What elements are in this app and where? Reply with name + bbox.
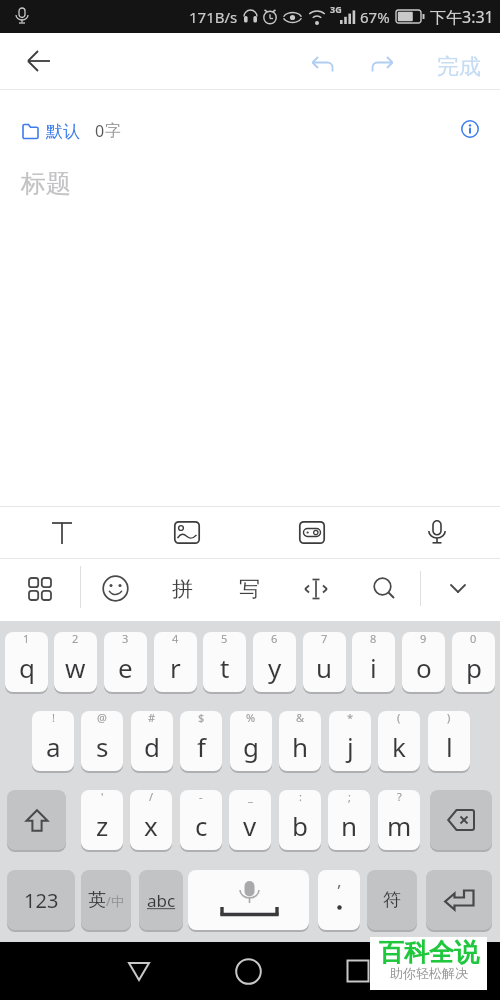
staticText: /: [149, 789, 154, 804]
staticText: s: [96, 729, 109, 764]
staticText: o: [416, 650, 432, 685]
button[interactable]: [409, 507, 465, 558]
staticText: (: [397, 710, 401, 725]
staticText: 67%: [360, 7, 390, 27]
staticText: _: [248, 789, 253, 804]
button[interactable]: [290, 562, 342, 615]
staticText: &: [296, 710, 305, 725]
staticText: $: [198, 710, 205, 725]
button[interactable]: n: [328, 790, 370, 850]
staticText: 中: [111, 893, 124, 909]
button[interactable]: q: [5, 632, 48, 692]
button[interactable]: ,: [318, 870, 360, 930]
button[interactable]: [284, 507, 340, 558]
staticText: f: [197, 729, 206, 764]
button[interactable]: i: [352, 632, 395, 692]
button[interactable]: b: [279, 790, 321, 850]
button[interactable]: 写: [223, 562, 275, 615]
button[interactable]: c: [180, 790, 222, 850]
staticText: 写: [239, 576, 260, 602]
button[interactable]: [188, 870, 309, 930]
staticText: ,: [337, 869, 342, 892]
staticText: 2: [72, 631, 79, 646]
staticText: 5: [221, 631, 228, 646]
staticText: 默认: [46, 121, 80, 142]
staticText: e: [118, 650, 133, 685]
staticText: 完成: [437, 53, 481, 81]
staticText: k: [392, 729, 406, 764]
button[interactable]: e: [104, 632, 147, 692]
button[interactable]: u: [303, 632, 346, 692]
button[interactable]: [34, 507, 90, 558]
staticText: #: [148, 710, 156, 725]
staticText: 英: [88, 889, 106, 912]
button[interactable]: 完成: [428, 45, 490, 89]
button[interactable]: [302, 45, 338, 81]
staticText: 6: [271, 631, 278, 646]
staticText: t: [220, 650, 230, 685]
button[interactable]: k: [378, 711, 420, 771]
button[interactable]: d: [131, 711, 173, 771]
staticText: c: [195, 808, 208, 843]
button[interactable]: [14, 562, 66, 615]
button[interactable]: [367, 45, 403, 81]
staticText: 0: [470, 631, 477, 646]
button[interactable]: 符: [367, 870, 417, 930]
button[interactable]: r: [154, 632, 197, 692]
button[interactable]: y: [253, 632, 296, 692]
button[interactable]: [430, 790, 492, 850]
staticText: 拼: [172, 576, 193, 602]
button[interactable]: 英: [81, 870, 131, 930]
staticText: u: [316, 650, 333, 685]
button[interactable]: a: [32, 711, 74, 771]
button[interactable]: [214, 949, 282, 993]
staticText: v: [243, 808, 257, 843]
staticText: r: [170, 650, 181, 685]
button[interactable]: 百科全说: [370, 937, 487, 990]
staticText: 8: [370, 631, 377, 646]
button[interactable]: 默认: [22, 116, 80, 146]
button[interactable]: [432, 562, 484, 615]
button[interactable]: t: [203, 632, 246, 692]
button[interactable]: [89, 562, 141, 615]
button[interactable]: w: [54, 632, 97, 692]
staticText: 标题: [21, 168, 71, 199]
button[interactable]: [426, 870, 492, 930]
button[interactable]: v: [229, 790, 271, 850]
button[interactable]: 拼: [156, 562, 208, 615]
button[interactable]: [105, 949, 173, 993]
staticText: *: [347, 710, 354, 725]
staticText: 下午3:31: [430, 6, 494, 28]
button[interactable]: l: [428, 711, 470, 771]
staticText: @: [97, 710, 107, 725]
staticText: b: [292, 808, 308, 843]
button[interactable]: p: [452, 632, 495, 692]
button[interactable]: f: [180, 711, 222, 771]
button[interactable]: 123: [7, 870, 75, 930]
button[interactable]: [16, 38, 62, 84]
button[interactable]: [159, 507, 215, 558]
button[interactable]: g: [230, 711, 272, 771]
staticText: j: [347, 729, 354, 764]
staticText: 助你轻松解决: [390, 965, 468, 981]
button[interactable]: [450, 109, 490, 149]
button[interactable]: s: [81, 711, 123, 771]
staticText: 符: [383, 889, 401, 912]
button[interactable]: o: [402, 632, 445, 692]
staticText: 171B/s: [189, 7, 238, 27]
button[interactable]: h: [279, 711, 321, 771]
button[interactable]: j: [329, 711, 371, 771]
staticText: 7: [321, 631, 328, 646]
button[interactable]: m: [378, 790, 420, 850]
staticText: 123: [24, 887, 59, 914]
staticText: ?: [397, 789, 402, 804]
button[interactable]: [358, 562, 410, 615]
button[interactable]: [324, 949, 392, 993]
button[interactable]: abc: [139, 870, 183, 930]
staticText: m: [387, 808, 412, 843]
staticText: 百科全说: [379, 937, 479, 968]
button[interactable]: x: [130, 790, 172, 850]
staticText: i: [370, 650, 377, 685]
button[interactable]: z: [81, 790, 123, 850]
button[interactable]: [7, 790, 66, 850]
